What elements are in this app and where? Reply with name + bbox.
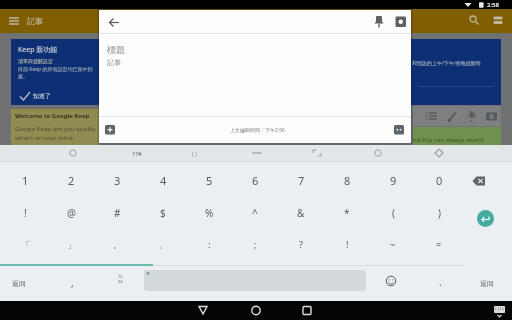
staticText: $ [160,206,166,220]
staticText: 6 [252,173,259,188]
button[interactable]: 12 34 [105,264,135,294]
staticText: 4 [160,173,167,188]
button[interactable] [477,210,494,227]
staticText: 12 34 [118,274,123,284]
staticText: 」 [67,239,76,250]
button[interactable] [245,301,267,320]
button[interactable] [144,270,366,291]
staticText: 7 [298,173,305,188]
staticText: 返回 [12,279,26,288]
button[interactable]: * [324,197,370,228]
staticText: 知道了 [33,92,51,100]
button[interactable]: 。 [94,229,140,259]
staticText: ? [299,238,303,250]
button[interactable]: ? [278,229,324,259]
staticText: , [71,276,74,290]
button[interactable]: 「 [2,229,48,259]
staticText: 記事 [107,58,121,67]
button[interactable] [16,89,86,103]
button[interactable] [466,12,482,28]
button[interactable]: 5 [186,164,232,196]
button[interactable]: # [94,197,140,228]
staticText: ) [438,206,441,220]
button[interactable]: 6 [232,164,278,196]
button[interactable]: 」 [48,229,94,259]
button[interactable] [6,13,22,29]
button[interactable]: : [186,229,232,259]
button[interactable] [104,124,117,136]
staticText: 3 [114,173,121,188]
staticText: ( [392,206,395,220]
staticText: Keep 新功能 [18,45,58,55]
button[interactable] [492,303,510,319]
button[interactable]: 7 [278,164,324,196]
button[interactable]: 4 [140,164,186,196]
button[interactable]: % [186,197,232,228]
button[interactable]: $ [140,197,186,228]
button[interactable] [107,15,122,30]
staticText: ( ) [192,150,198,158]
staticText: 0 [436,173,443,188]
staticText: . [439,275,442,289]
staticText: what's on your mind. [15,134,75,142]
staticText: Google Keep lets you quickly [15,125,96,133]
button[interactable] [392,13,409,30]
staticText: 1 [22,173,29,188]
staticText: = [436,238,442,250]
staticText: 上次編輯時間：下午2:56 [230,127,285,134]
staticText: ; [254,238,257,250]
button[interactable]: 0 [416,164,462,196]
staticText: 「 [21,239,30,250]
button[interactable] [490,12,506,28]
button[interactable] [393,124,406,136]
staticText: ! [24,206,27,220]
staticText: 1?# [132,150,142,158]
staticText: 記事 [27,16,43,26]
staticText: 標題 [107,44,125,55]
staticText: ~ [390,238,396,250]
staticText: 2:58 [487,1,499,9]
staticText: : [208,238,211,250]
staticText: 。 [113,239,122,250]
button[interactable]: 9 [370,164,416,196]
button[interactable] [192,301,214,320]
staticText: 目前 Keep 的所有設定均已集中到 [18,66,93,73]
button[interactable]: ) [416,197,462,228]
button[interactable]: ( [370,197,416,228]
button[interactable]: ! [324,229,370,259]
staticText: 5 [206,173,213,188]
button[interactable]: ^ [232,197,278,228]
button[interactable] [296,301,318,320]
button[interactable] [380,270,402,292]
staticText: @ [67,206,76,220]
staticText: 和預設的上午/下午/傍晚提醒時 [412,60,481,67]
button[interactable]: @ [48,197,94,228]
button[interactable]: ! [2,197,48,228]
button[interactable] [370,13,387,30]
staticText: 8 [344,173,351,188]
button[interactable]: , [52,268,92,298]
button[interactable]: ~ [370,229,416,259]
staticText: 處。 [18,73,28,79]
button[interactable] [466,170,491,192]
button[interactable]: . [425,268,455,296]
staticText: 、 [159,239,168,250]
staticText: 9 [390,173,397,188]
staticText: # [114,206,121,220]
button[interactable]: & [278,197,324,228]
button[interactable]: 8 [324,164,370,196]
staticText: 2 [68,173,75,188]
button[interactable]: = [416,229,462,259]
staticText: ! [346,238,349,250]
staticText: % [205,206,214,220]
button[interactable]: 1 [2,164,48,196]
staticText: 清單與提醒設定 [18,58,53,64]
button[interactable]: 返回 [0,268,38,298]
button[interactable]: ; [232,229,278,259]
button[interactable]: 3 [94,164,140,196]
button[interactable]: 2 [48,164,94,196]
button[interactable]: 返回 [468,268,506,298]
staticText: ^ [252,206,258,220]
staticText: * [344,206,350,220]
